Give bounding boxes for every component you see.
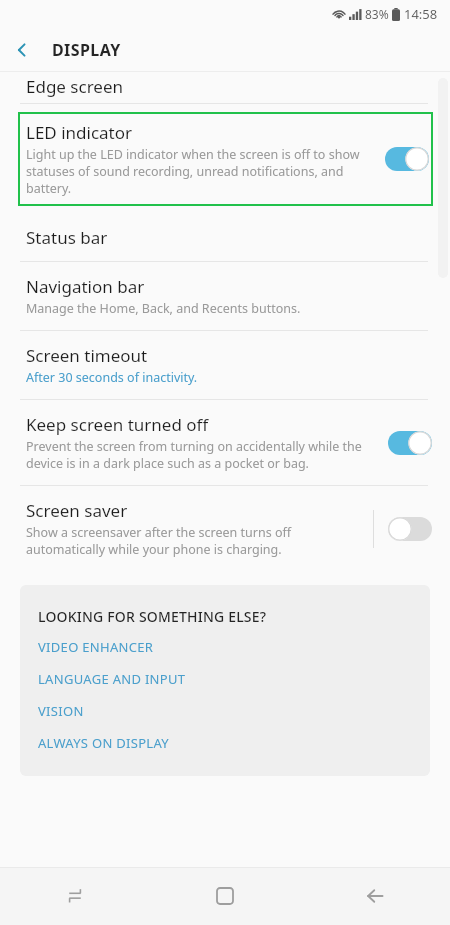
button[interactable]: LANGUAGE AND INPUT (38, 658, 414, 690)
staticText: Show a screensaver after the screen turn… (26, 524, 363, 558)
staticText: LANGUAGE AND INPUT (38, 670, 186, 688)
staticText: 83% (365, 6, 389, 22)
button[interactable]: LED indicator (18, 112, 433, 206)
button[interactable]: Back (0, 28, 44, 72)
button[interactable]: Screen timeout (0, 331, 450, 399)
staticText: Screen saver (26, 499, 128, 522)
staticText: Status bar (26, 226, 108, 249)
staticText: Light up the LED indicator when the scre… (26, 146, 377, 197)
staticText: LOOKING FOR SOMETHING ELSE? (38, 607, 267, 626)
button[interactable]: Back (300, 867, 450, 925)
staticText: Prevent the screen from turning on accid… (26, 438, 378, 472)
staticText: VISION (38, 702, 84, 720)
button[interactable]: VISION (38, 690, 414, 722)
staticText: After 30 seconds of inactivity. (26, 369, 198, 386)
staticText: Edge screen (26, 75, 124, 98)
staticText: Navigation bar (26, 275, 145, 298)
staticText: ALWAYS ON DISPLAY (38, 734, 169, 752)
button[interactable]: Status bar (0, 216, 450, 261)
button[interactable]: Navigation bar (0, 262, 450, 330)
button[interactable]: VIDEO ENHANCER (38, 626, 414, 658)
staticText: LED indicator (26, 121, 133, 144)
staticText: DISPLAY (52, 39, 121, 61)
button[interactable] (388, 431, 432, 455)
button[interactable]: Screen saver (0, 486, 450, 571)
staticText: Manage the Home, Back, and Recents butto… (26, 300, 301, 317)
staticText: Keep screen turned off (26, 413, 209, 436)
button[interactable] (385, 147, 429, 171)
button[interactable]: Edge screen (0, 72, 450, 98)
staticText: VIDEO ENHANCER (38, 638, 154, 656)
staticText: 14:58 (404, 5, 438, 23)
button[interactable]: Home (150, 867, 300, 925)
button[interactable]: ALWAYS ON DISPLAY (38, 722, 414, 754)
button[interactable]: Keep screen turned off (0, 400, 450, 485)
button[interactable]: Recents (0, 867, 150, 925)
staticText: Screen timeout (26, 344, 148, 367)
button[interactable] (388, 517, 432, 541)
